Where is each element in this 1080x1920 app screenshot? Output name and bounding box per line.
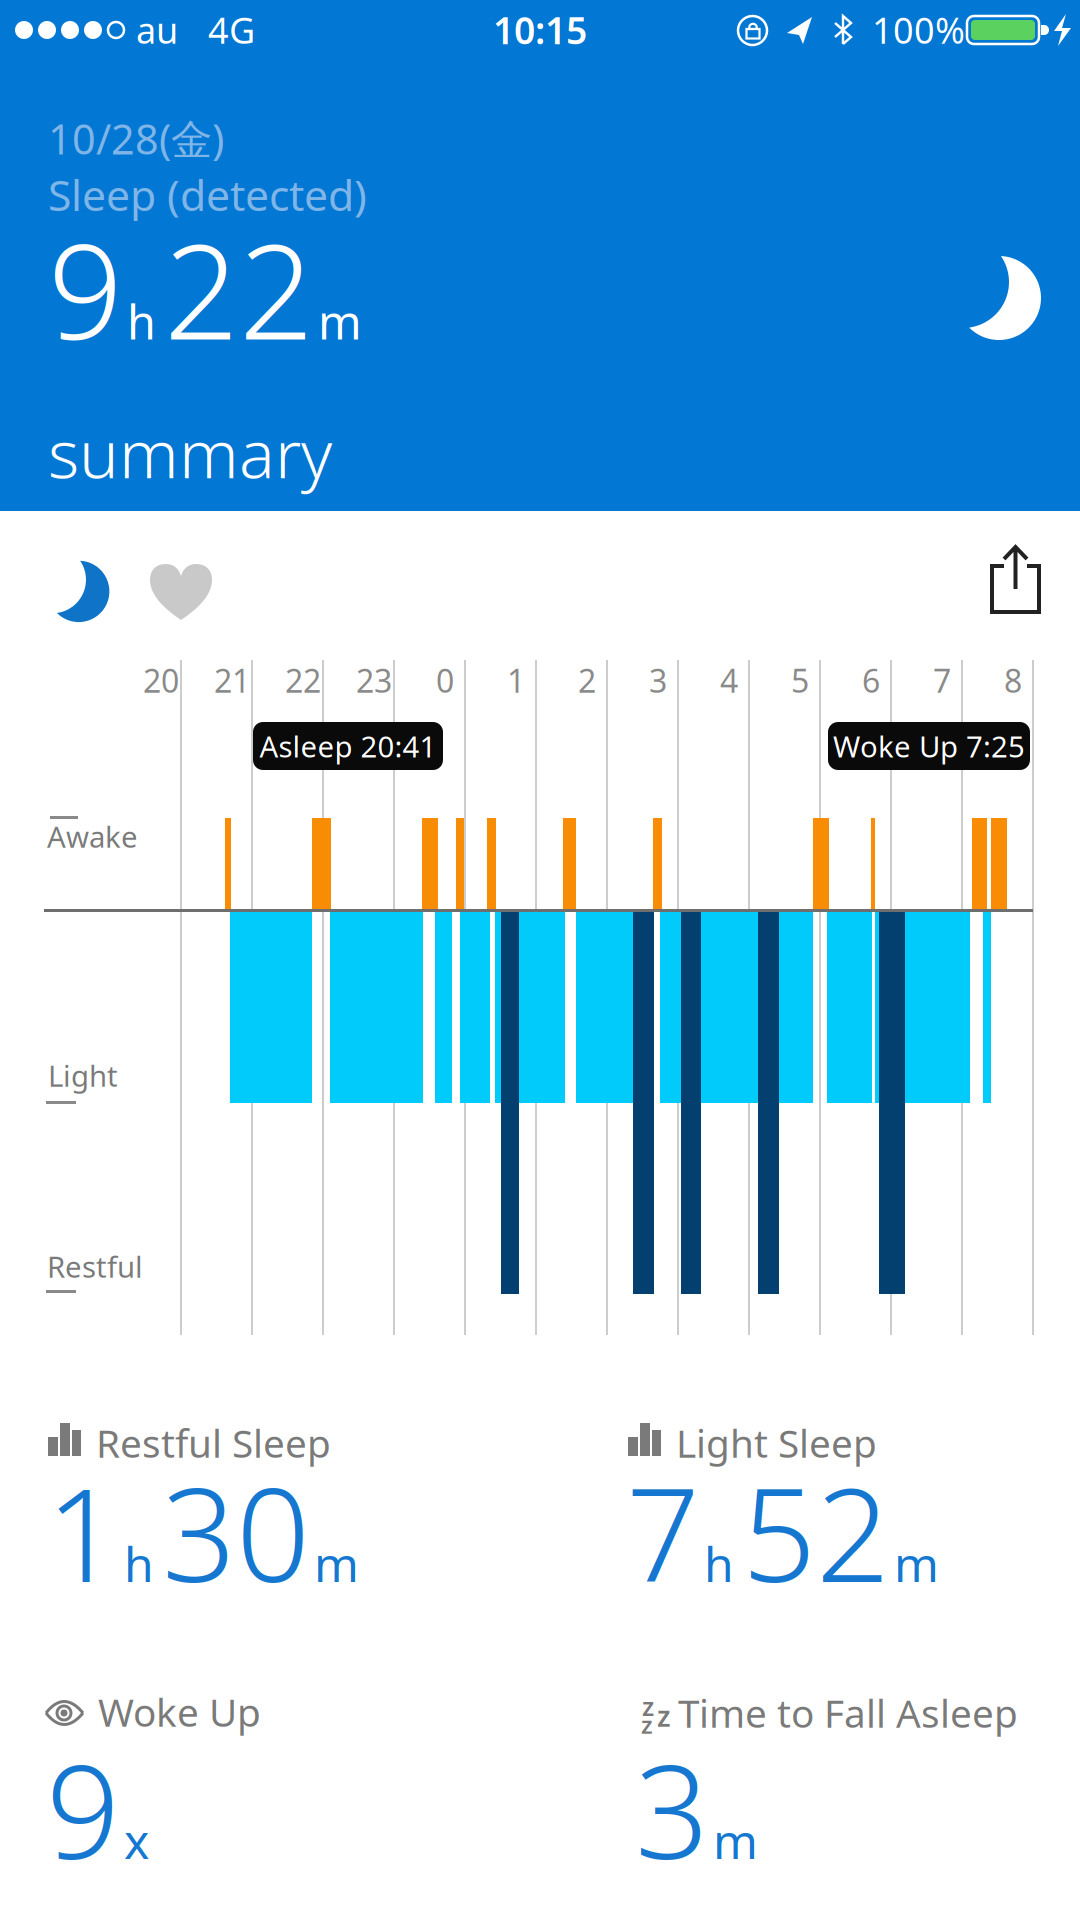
staticText: z [641,1708,653,1740]
staticText: 4 [720,659,738,701]
staticText: Light [48,1056,118,1095]
staticText: 5 [791,659,809,701]
staticText: 7 [626,1446,700,1618]
button[interactable]: Sleep [44,558,108,624]
button[interactable]: Favorite [150,562,212,622]
staticText: 10:15 [493,5,587,55]
button[interactable]: Share [990,543,1042,615]
staticText: h [127,290,156,352]
staticText: 3 [635,1723,709,1895]
staticText: Time to Fall Asleep [678,1687,1018,1738]
staticText: Restful [47,1247,143,1286]
staticText: 20 [143,659,179,701]
staticText: x [124,1809,149,1872]
staticText: 1 [46,1446,120,1618]
staticText: h [124,1532,154,1595]
staticText: 2 [578,659,596,701]
staticText: m [318,290,362,352]
staticText: 100% [872,6,965,54]
staticText: Asleep 20:41 [259,726,436,765]
staticText: 9 [48,202,123,375]
staticText: Restful Sleep [96,1417,331,1468]
staticText: Sleep (detected) [48,166,367,223]
staticText: au [136,6,178,54]
staticText: 52 [742,1446,890,1618]
staticText: 9 [46,1723,120,1895]
staticText: 3 [649,659,667,701]
staticText: 22 [164,202,314,375]
staticText: z [642,1689,654,1723]
staticText: 7 [933,659,951,701]
staticText: 8 [1004,659,1022,701]
staticText: 6 [862,659,880,701]
staticText: 23 [356,659,392,701]
staticText: Woke Up [98,1686,261,1737]
staticText: m [713,1809,758,1872]
staticText: h [704,1532,734,1595]
staticText: Awake [47,817,138,856]
staticText: 21 [214,659,250,701]
staticText: summary [48,408,332,496]
staticText: Woke Up 7:25 [833,726,1025,765]
staticText: 10/28(金) [48,111,224,166]
staticText: 30 [162,1446,310,1618]
staticText: m [314,1532,359,1595]
staticText: 4G [208,6,255,54]
staticText: 22 [285,659,321,701]
staticText: z [657,1697,671,1735]
staticText: m [894,1532,939,1595]
staticText: 1 [507,659,525,701]
staticText: 0 [436,659,454,701]
staticText: Light Sleep [676,1417,877,1468]
